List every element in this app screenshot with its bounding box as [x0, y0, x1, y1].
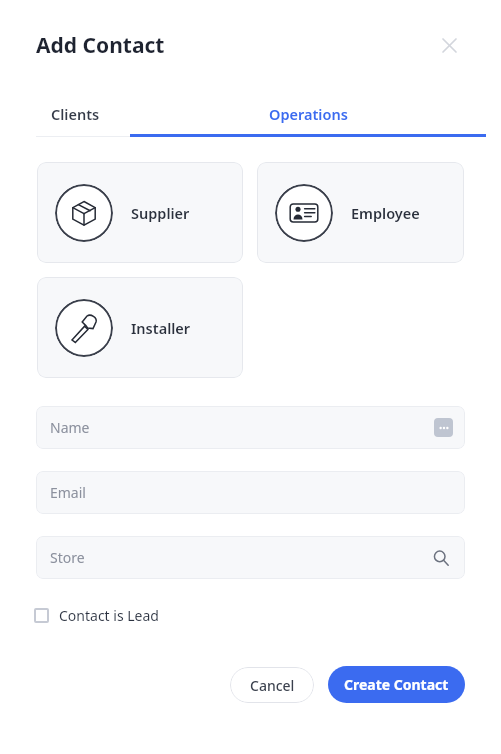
button[interactable]: Store [36, 536, 465, 579]
staticText: Supplier [131, 203, 190, 223]
button[interactable]: Clients [36, 91, 115, 137]
button[interactable]: Installer [37, 277, 243, 378]
button[interactable]: Close [435, 31, 463, 59]
button[interactable]: More options [434, 418, 453, 437]
staticText: Store [50, 548, 85, 567]
button[interactable]: Contact is Lead [34, 601, 159, 629]
button[interactable]: Name [36, 406, 465, 449]
staticText: Installer [131, 318, 191, 338]
button[interactable]: Employee [257, 162, 464, 263]
staticText: Operations [269, 104, 348, 124]
button[interactable]: Search [431, 548, 451, 568]
button[interactable]: Supplier [37, 162, 243, 263]
staticText: Contact is Lead [59, 606, 159, 625]
staticText: Name [50, 418, 90, 437]
button[interactable]: Email [36, 471, 465, 514]
staticText: Cancel [250, 676, 295, 695]
button[interactable]: Cancel [230, 667, 314, 703]
button[interactable]: Operations [115, 91, 501, 137]
staticText: Create Contact [344, 675, 449, 694]
button[interactable]: Create Contact [328, 666, 465, 703]
staticText: Email [50, 483, 86, 502]
staticText: Add Contact [36, 31, 165, 60]
staticText: Employee [351, 203, 420, 223]
staticText: Clients [51, 104, 100, 124]
